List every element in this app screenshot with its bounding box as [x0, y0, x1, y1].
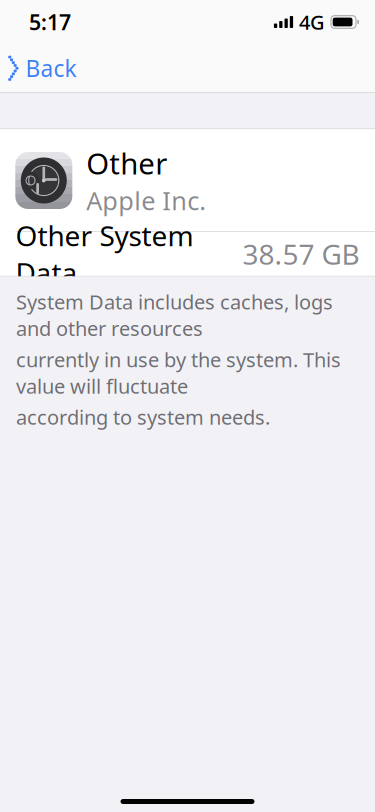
staticText: System Data includes caches, logs and ot…: [16, 288, 333, 342]
staticText: 5:17: [29, 8, 71, 36]
staticText: 4G: [299, 9, 325, 35]
staticText: according to system needs.: [16, 404, 270, 430]
staticText: Other: [86, 144, 167, 183]
staticText: Other System Data: [16, 217, 194, 291]
staticText: 38.57 GB: [242, 235, 359, 272]
staticText: Apple Inc.: [86, 184, 206, 217]
staticText: Back: [25, 53, 76, 83]
button[interactable]: Other System Data: [0, 232, 375, 276]
staticText: currently in use by the system. This val…: [16, 346, 341, 399]
button[interactable]: Back: [1, 44, 88, 92]
